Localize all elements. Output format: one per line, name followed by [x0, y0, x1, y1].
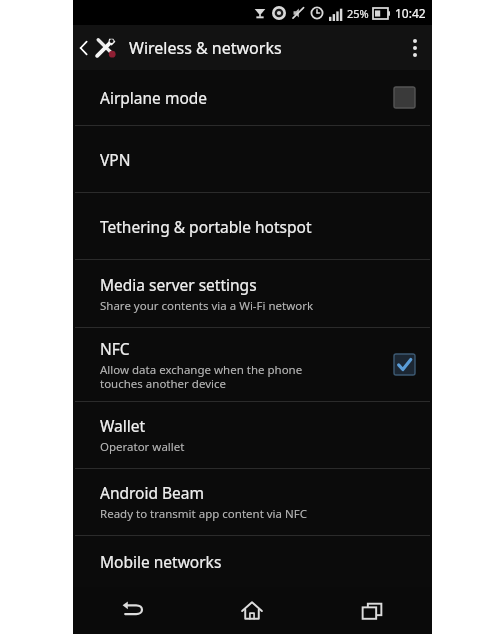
staticText: VPN [100, 149, 131, 170]
staticText: Wallet [100, 415, 146, 436]
button[interactable]: NFC toggle [393, 353, 416, 376]
button[interactable]: Back [73, 25, 292, 70]
staticText: Ready to transmit app content via NFC [100, 506, 307, 522]
button[interactable]: Home [192, 587, 312, 634]
staticText: Allow data exchange when the phone touch… [100, 362, 303, 391]
staticText: Media server settings [100, 274, 257, 295]
button[interactable]: Wallet [73, 402, 432, 468]
staticText: Tethering & portable hotspot [100, 216, 312, 237]
staticText: Share your contents via a Wi-Fi network [100, 298, 314, 314]
button[interactable]: Back [73, 587, 192, 634]
staticText: Airplane mode [100, 87, 208, 108]
staticText: Operator wallet [100, 439, 185, 455]
staticText: Mobile networks [100, 551, 222, 572]
staticText: 10:42 [395, 5, 426, 21]
button[interactable]: More options [398, 25, 432, 70]
other: Back [79, 40, 88, 56]
button[interactable]: Recents [312, 587, 432, 634]
button[interactable]: Airplane mode [73, 70, 432, 125]
staticText: Android Beam [100, 482, 205, 503]
button[interactable]: Mobile networks [73, 536, 432, 587]
button[interactable]: VPN [73, 126, 432, 192]
button[interactable]: Android Beam [73, 469, 432, 535]
button[interactable]: Media server settings [73, 260, 432, 327]
staticText: 25% [347, 6, 369, 21]
button[interactable]: Airplane mode toggle [393, 86, 416, 109]
button[interactable]: NFC [73, 328, 432, 401]
button[interactable]: Tethering & portable hotspot [73, 193, 432, 259]
staticText: NFC [100, 338, 130, 359]
staticText: Wireless & networks [129, 37, 282, 59]
